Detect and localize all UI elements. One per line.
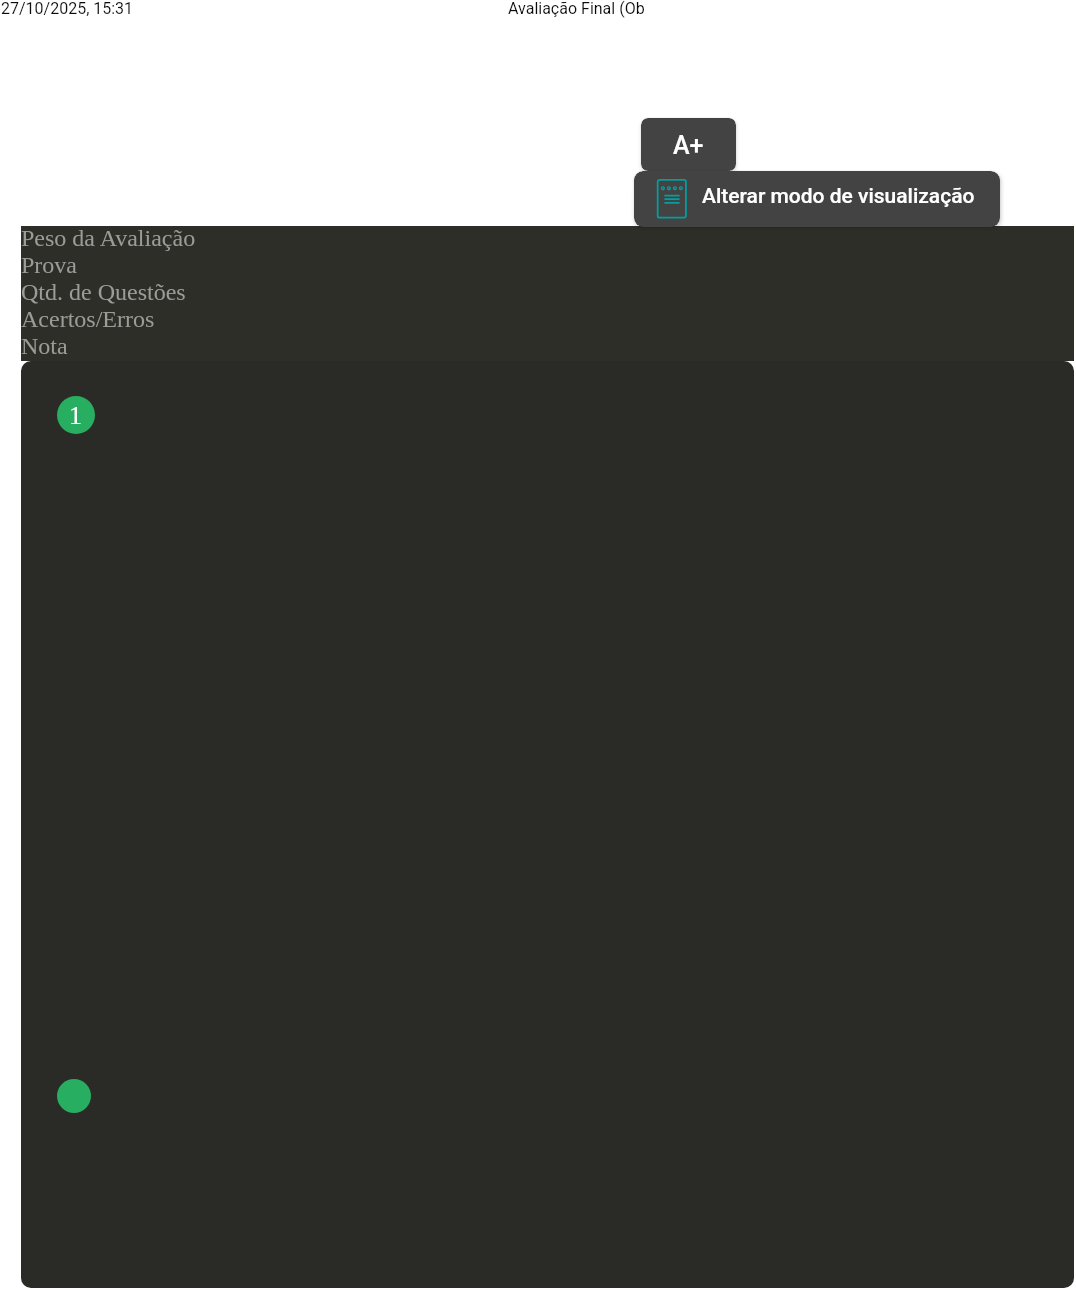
button[interactable]: Questão respondida <box>57 1079 91 1113</box>
button[interactable]: 1 <box>21 361 1074 1288</box>
staticText: Alterar modo de visualização <box>702 184 975 209</box>
button[interactable]: 1 <box>57 396 95 434</box>
staticText: Avaliação Final (Ob <box>508 0 645 18</box>
button[interactable]: Alterar modo de visualização <box>634 171 1000 227</box>
button[interactable]: Aumentar tamanho do texto <box>641 118 736 171</box>
staticText: Qtd. de Questões <box>21 279 186 306</box>
staticText: Acertos/Erros <box>21 306 155 333</box>
staticText: 1 <box>69 401 82 430</box>
staticText: Nota <box>21 333 68 360</box>
staticText: 27/10/2025, 15:31 <box>1 0 134 18</box>
staticText: Peso da Avaliação <box>21 225 196 252</box>
staticText: Prova <box>21 252 77 279</box>
other: Alterar modo de visualização <box>656 177 688 219</box>
staticText: A+ <box>673 131 704 160</box>
